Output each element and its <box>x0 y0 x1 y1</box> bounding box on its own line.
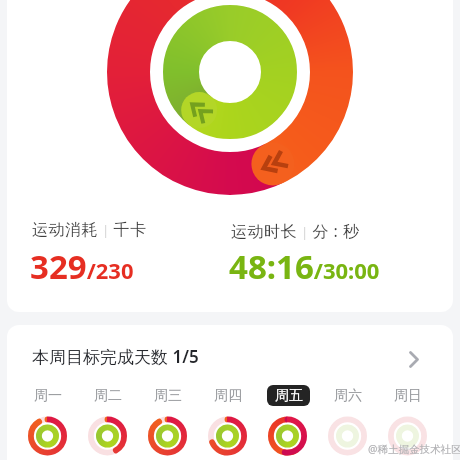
staticText: 周五 <box>275 387 303 405</box>
button[interactable]: 周日 <box>378 385 438 455</box>
staticText: 周一 <box>34 387 62 405</box>
staticText: 329/230 <box>30 244 134 289</box>
button[interactable]: 周一 <box>18 385 78 455</box>
staticText: 运动消耗 | 千卡 <box>32 220 147 240</box>
button[interactable]: 周三 <box>138 385 198 455</box>
staticText: 本周目标完成天数 1/5 <box>32 345 199 368</box>
staticText: 48:16/30:00 <box>229 244 380 289</box>
button[interactable]: 本周目标完成天数 1/5 <box>7 336 453 376</box>
button[interactable]: 周六 <box>318 385 378 455</box>
staticText: 周三 <box>154 387 182 405</box>
staticText: 周六 <box>334 387 362 405</box>
button[interactable]: 周五 <box>258 385 318 455</box>
staticText: 周二 <box>94 387 122 405</box>
staticText: 周四 <box>214 387 242 405</box>
button[interactable]: 周四 <box>198 385 258 455</box>
staticText: 运动时长 | 分 : 秒 <box>231 220 360 242</box>
staticText: @稀土掘金技术社区 <box>368 442 460 456</box>
staticText: 周日 <box>394 387 422 405</box>
button[interactable]: 周二 <box>78 385 138 455</box>
